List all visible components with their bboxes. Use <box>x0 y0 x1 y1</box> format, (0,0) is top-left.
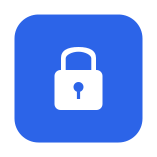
button[interactable]: Locked <box>14 14 142 142</box>
